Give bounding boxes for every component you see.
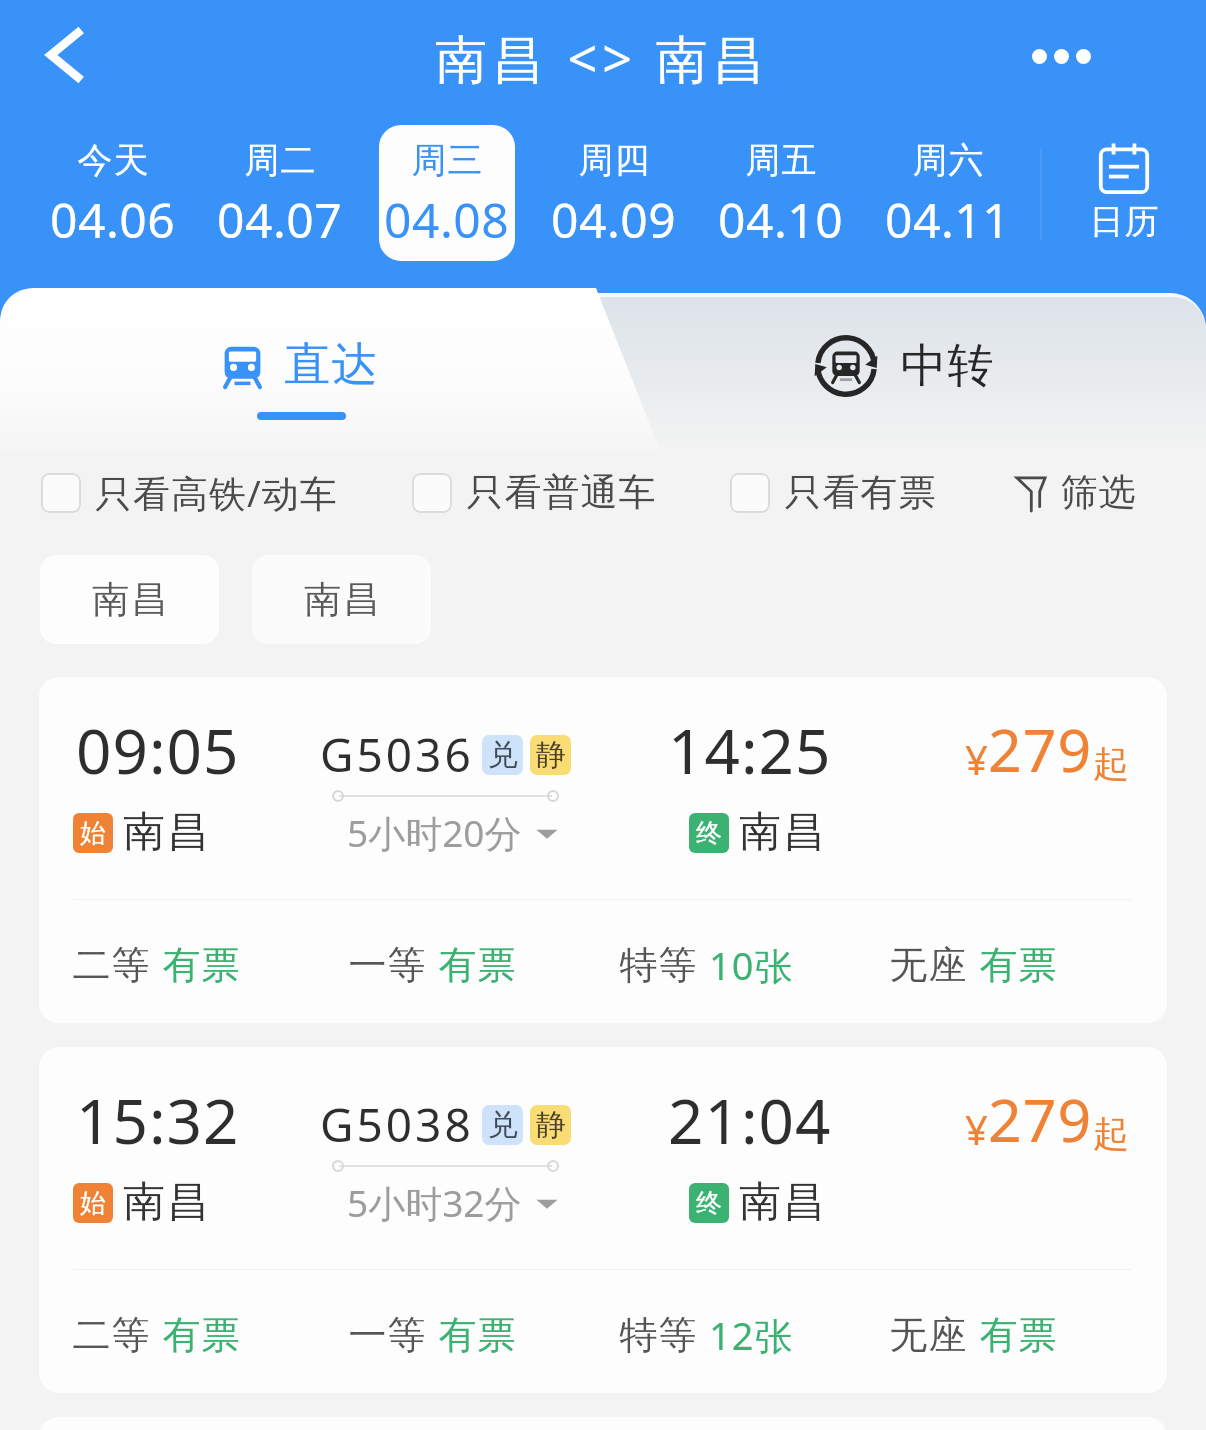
staticText: 279: [988, 709, 1093, 789]
button[interactable]: 直达: [219, 310, 394, 420]
staticText: 日历: [1089, 200, 1159, 243]
staticText: 21:04: [668, 1078, 832, 1162]
staticText: 南昌: [91, 576, 169, 623]
staticText: 直达: [284, 336, 378, 394]
staticText: 周四: [578, 138, 650, 182]
button[interactable]: 周六: [880, 125, 1016, 261]
button[interactable]: 中转: [814, 311, 1004, 421]
staticText: 04.10: [718, 187, 844, 252]
button[interactable]: 周五: [713, 125, 849, 261]
staticText: 15:32: [76, 1078, 240, 1162]
staticText: 兑: [488, 1106, 518, 1144]
button[interactable]: More options: [1005, 18, 1117, 94]
staticText: 只看高铁/动车: [95, 467, 338, 518]
staticText: ¥: [965, 1102, 988, 1156]
staticText: 二等: [72, 941, 150, 989]
staticText: 南昌: [738, 806, 826, 859]
staticText: G5036: [320, 723, 474, 786]
staticText: 279: [988, 1079, 1093, 1159]
button[interactable]: 周三: [379, 125, 515, 261]
staticText: 04.06: [50, 187, 176, 252]
staticText: 有票: [979, 1311, 1057, 1359]
staticText: 南昌 <> 南昌: [435, 22, 770, 93]
staticText: 起: [1093, 1111, 1129, 1156]
staticText: 有票: [979, 941, 1057, 989]
staticText: 周六: [912, 138, 984, 182]
staticText: 只看普通车: [466, 469, 656, 516]
staticText: 周三: [411, 138, 483, 182]
staticText: 无座: [889, 1311, 967, 1359]
staticText: 04.08: [384, 187, 510, 252]
staticText: 南昌: [738, 1176, 826, 1229]
button[interactable]: 筛选: [1016, 469, 1206, 516]
staticText: 南昌: [303, 576, 381, 623]
button[interactable]: 只看高铁/动车: [41, 467, 338, 518]
button[interactable]: Back: [29, 12, 103, 98]
button[interactable]: 日历: [1062, 140, 1186, 252]
button[interactable]: 15:32: [39, 1047, 1167, 1393]
staticText: 终: [696, 1187, 722, 1220]
staticText: 12张: [709, 1309, 794, 1361]
staticText: 无座: [889, 941, 967, 989]
staticText: 10张: [709, 939, 794, 991]
staticText: 周二: [244, 138, 316, 182]
staticText: 起: [1093, 741, 1129, 786]
staticText: 只看有票: [784, 469, 936, 516]
staticText: 5小时20分: [347, 807, 522, 858]
staticText: 筛选: [1060, 469, 1136, 516]
staticText: 周五: [745, 138, 817, 182]
staticText: 静: [536, 1106, 566, 1144]
staticText: 今天: [77, 138, 149, 182]
staticText: 静: [536, 736, 566, 774]
staticText: 始: [80, 817, 106, 850]
staticText: ¥: [965, 732, 988, 786]
button[interactable]: 南昌: [40, 555, 219, 644]
button[interactable]: 只看有票: [730, 469, 936, 516]
button[interactable]: 南昌: [252, 555, 431, 644]
staticText: 有票: [438, 1311, 516, 1359]
staticText: 特等: [619, 1311, 697, 1359]
staticText: 09:05: [76, 708, 240, 792]
staticText: 南昌: [122, 1176, 210, 1229]
staticText: 兑: [488, 736, 518, 774]
staticText: 终: [696, 817, 722, 850]
staticText: 有票: [438, 941, 516, 989]
button[interactable]: 只看普通车: [412, 469, 656, 516]
staticText: 有票: [162, 1311, 240, 1359]
staticText: G5038: [320, 1093, 474, 1156]
staticText: 二等: [72, 1311, 150, 1359]
staticText: 14:25: [668, 708, 832, 792]
staticText: 04.07: [217, 187, 343, 252]
button[interactable]: 周四: [546, 125, 682, 261]
staticText: 始: [80, 1187, 106, 1220]
button[interactable]: 今天: [45, 125, 181, 261]
staticText: 5小时32分: [347, 1177, 522, 1228]
staticText: 一等: [348, 1311, 426, 1359]
staticText: 有票: [162, 941, 240, 989]
button[interactable]: 09:05: [39, 677, 1167, 1023]
staticText: 一等: [348, 941, 426, 989]
button[interactable]: 周二: [212, 125, 348, 261]
staticText: 南昌: [122, 806, 210, 859]
staticText: 04.11: [885, 187, 1011, 252]
staticText: 04.09: [551, 187, 677, 252]
staticText: 中转: [900, 337, 994, 395]
staticText: 特等: [619, 941, 697, 989]
